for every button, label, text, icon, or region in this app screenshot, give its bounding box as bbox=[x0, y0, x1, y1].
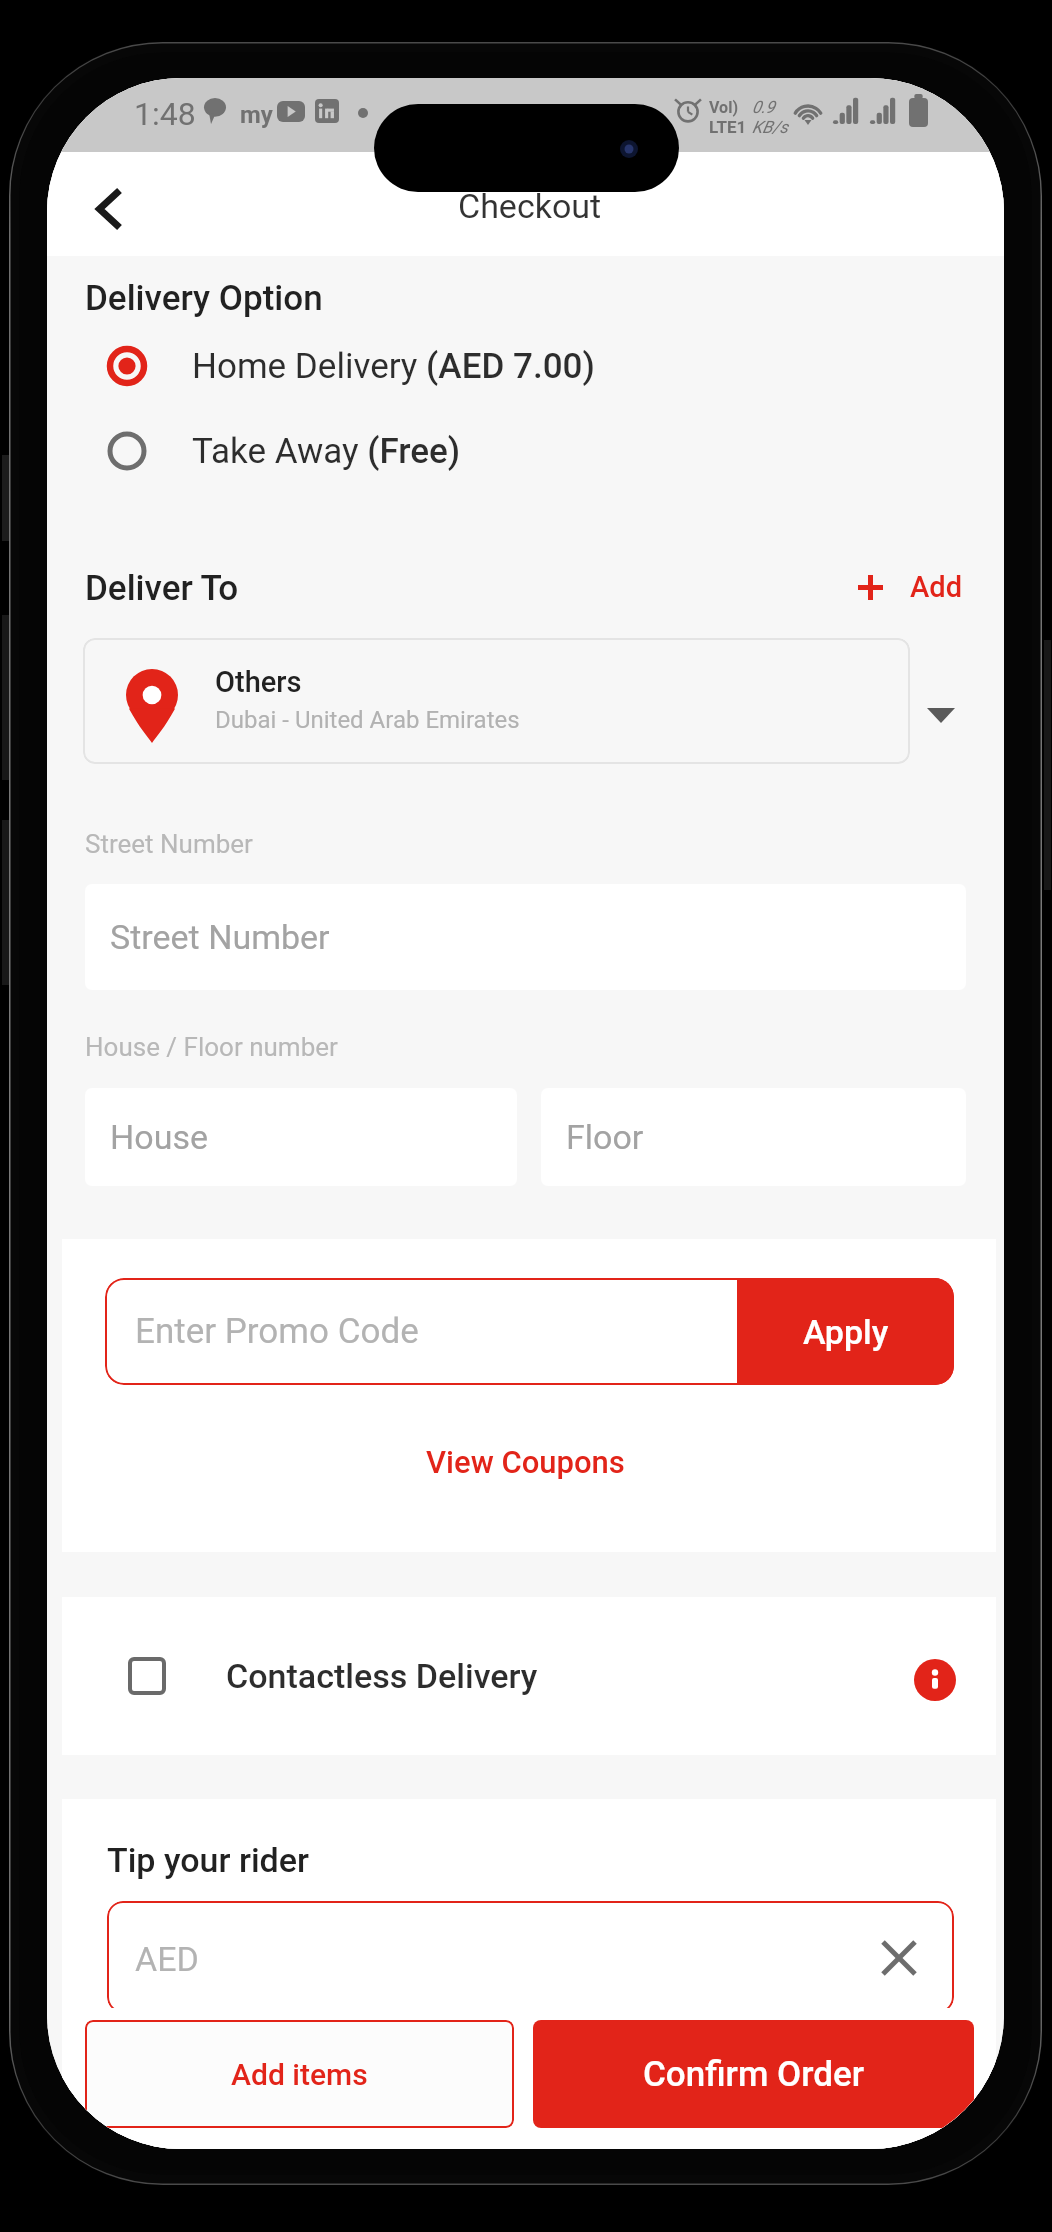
button[interactable]: Floor bbox=[541, 1088, 966, 1186]
staticText: Take Away (Free) bbox=[192, 431, 461, 472]
button[interactable]: Confirm Order bbox=[533, 2020, 974, 2128]
staticText: Apply bbox=[803, 1312, 889, 1352]
staticText: Enter Promo Code bbox=[135, 1311, 419, 1352]
staticText: Street Number bbox=[85, 829, 253, 859]
staticText: LTE1 bbox=[709, 117, 747, 137]
staticText: Contactless Delivery bbox=[226, 1656, 538, 1696]
staticText: House / Floor number bbox=[85, 1032, 338, 1062]
button[interactable]: Change address bbox=[908, 682, 974, 748]
button[interactable]: Home Delivery (AED 7.00) bbox=[85, 324, 785, 408]
button[interactable]: Street Number bbox=[85, 884, 966, 990]
button[interactable]: Info bbox=[905, 1650, 965, 1710]
button[interactable]: Contactless Delivery bbox=[108, 1637, 608, 1715]
staticText: Confirm Order bbox=[643, 2054, 865, 2095]
staticText: Home Delivery (AED 7.00) bbox=[192, 346, 595, 387]
button[interactable]: House bbox=[85, 1088, 517, 1186]
button[interactable]: Others bbox=[83, 638, 910, 764]
staticText: AED bbox=[135, 1939, 199, 1979]
staticText: Floor bbox=[566, 1117, 644, 1157]
button[interactable]: Enter Promo Code bbox=[105, 1278, 737, 1385]
staticText: Add items bbox=[231, 2057, 368, 2092]
button[interactable]: Clear tip bbox=[870, 1929, 928, 1987]
button[interactable]: Take Away (Free) bbox=[85, 409, 785, 493]
staticText: Delivery Option bbox=[85, 278, 323, 319]
button[interactable]: Back bbox=[74, 174, 144, 244]
button[interactable]: AED bbox=[107, 1901, 954, 2013]
staticText: 1:48 bbox=[134, 95, 196, 133]
button[interactable]: View Coupons bbox=[416, 1434, 635, 1490]
staticText: Add bbox=[910, 570, 963, 604]
staticText: Street Number bbox=[110, 917, 330, 957]
staticText: KB/s bbox=[752, 117, 788, 137]
staticText: House bbox=[110, 1117, 208, 1157]
button[interactable]: Add items bbox=[85, 2020, 514, 2128]
staticText: 0.9 bbox=[752, 97, 780, 117]
staticText: my bbox=[240, 101, 273, 129]
staticText: Deliver To bbox=[85, 568, 239, 609]
button[interactable]: Apply bbox=[737, 1278, 954, 1385]
staticText: Tip your rider bbox=[107, 1840, 309, 1880]
staticText: Vol) bbox=[709, 98, 739, 117]
button[interactable]: Add bbox=[840, 556, 970, 618]
staticText: Dubai - United Arab Emirates bbox=[215, 706, 520, 734]
staticText: Checkout bbox=[458, 186, 602, 226]
staticText: Others bbox=[215, 665, 302, 699]
